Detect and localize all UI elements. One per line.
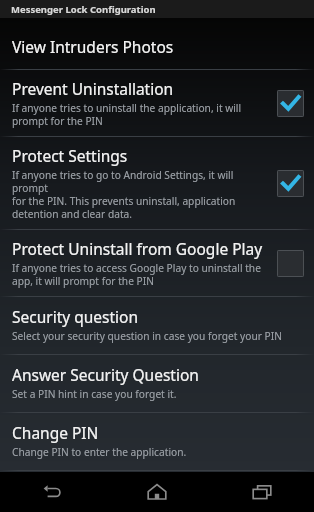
- button[interactable]: Protect Settings: [0, 137, 314, 229]
- button[interactable]: Recent apps: [209, 472, 314, 512]
- staticText: If anyone tries to uninstall the applica…: [12, 101, 242, 128]
- staticText: If anyone tries to go to Android Setting…: [12, 168, 269, 221]
- staticText: Security question: [12, 306, 139, 327]
- staticText: If anyone tries to access Google Play to…: [12, 261, 261, 288]
- staticText: Change PIN: [12, 422, 99, 443]
- button[interactable]: Answer Security Question: [0, 355, 314, 412]
- staticText: Change PIN to enter the application.: [12, 445, 187, 459]
- button[interactable]: Prevent Uninstallation: [0, 70, 314, 136]
- button[interactable]: Home: [104, 472, 209, 512]
- staticText: View Intruders Photos: [12, 36, 174, 57]
- button[interactable]: Back: [0, 472, 104, 512]
- staticText: Select your security question in case yo…: [12, 329, 282, 343]
- button[interactable]: Protect Uninstall from Google Play: [0, 230, 314, 296]
- button[interactable]: Security question: [0, 297, 314, 354]
- staticText: Protect Uninstall from Google Play: [12, 238, 263, 259]
- staticText: Answer Security Question: [12, 364, 199, 385]
- staticText: Set a PIN hint in case you forget it.: [12, 387, 177, 401]
- button[interactable]: Change PIN: [0, 413, 314, 470]
- staticText: Messenger Lock Configuration: [11, 3, 156, 16]
- button[interactable]: View Intruders Photos: [0, 32, 314, 69]
- staticText: Prevent Uninstallation: [12, 78, 174, 99]
- staticText: Protect Settings: [12, 145, 128, 166]
